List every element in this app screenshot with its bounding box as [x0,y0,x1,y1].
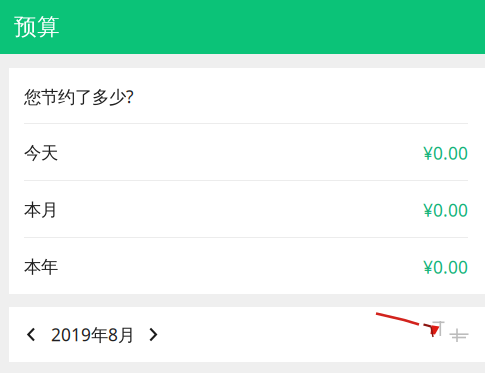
button[interactable]: 本月 [9,181,485,237]
staticText: ¥0.00 [423,198,468,221]
button[interactable]: 今天 [9,124,485,180]
staticText: ¥0.00 [423,255,468,278]
staticText: 2019年8月 [51,323,135,346]
button[interactable]: Next month [135,307,169,362]
staticText: 今天 [24,142,58,164]
staticText: 本月 [24,199,58,221]
staticText: 您节约了多少? [24,85,134,108]
staticText: 本年 [24,256,58,278]
staticText: 预算 [14,13,60,41]
button[interactable]: Previous month [18,307,51,362]
staticText: ¥0.00 [423,141,468,164]
button[interactable]: 本年 [9,238,485,294]
